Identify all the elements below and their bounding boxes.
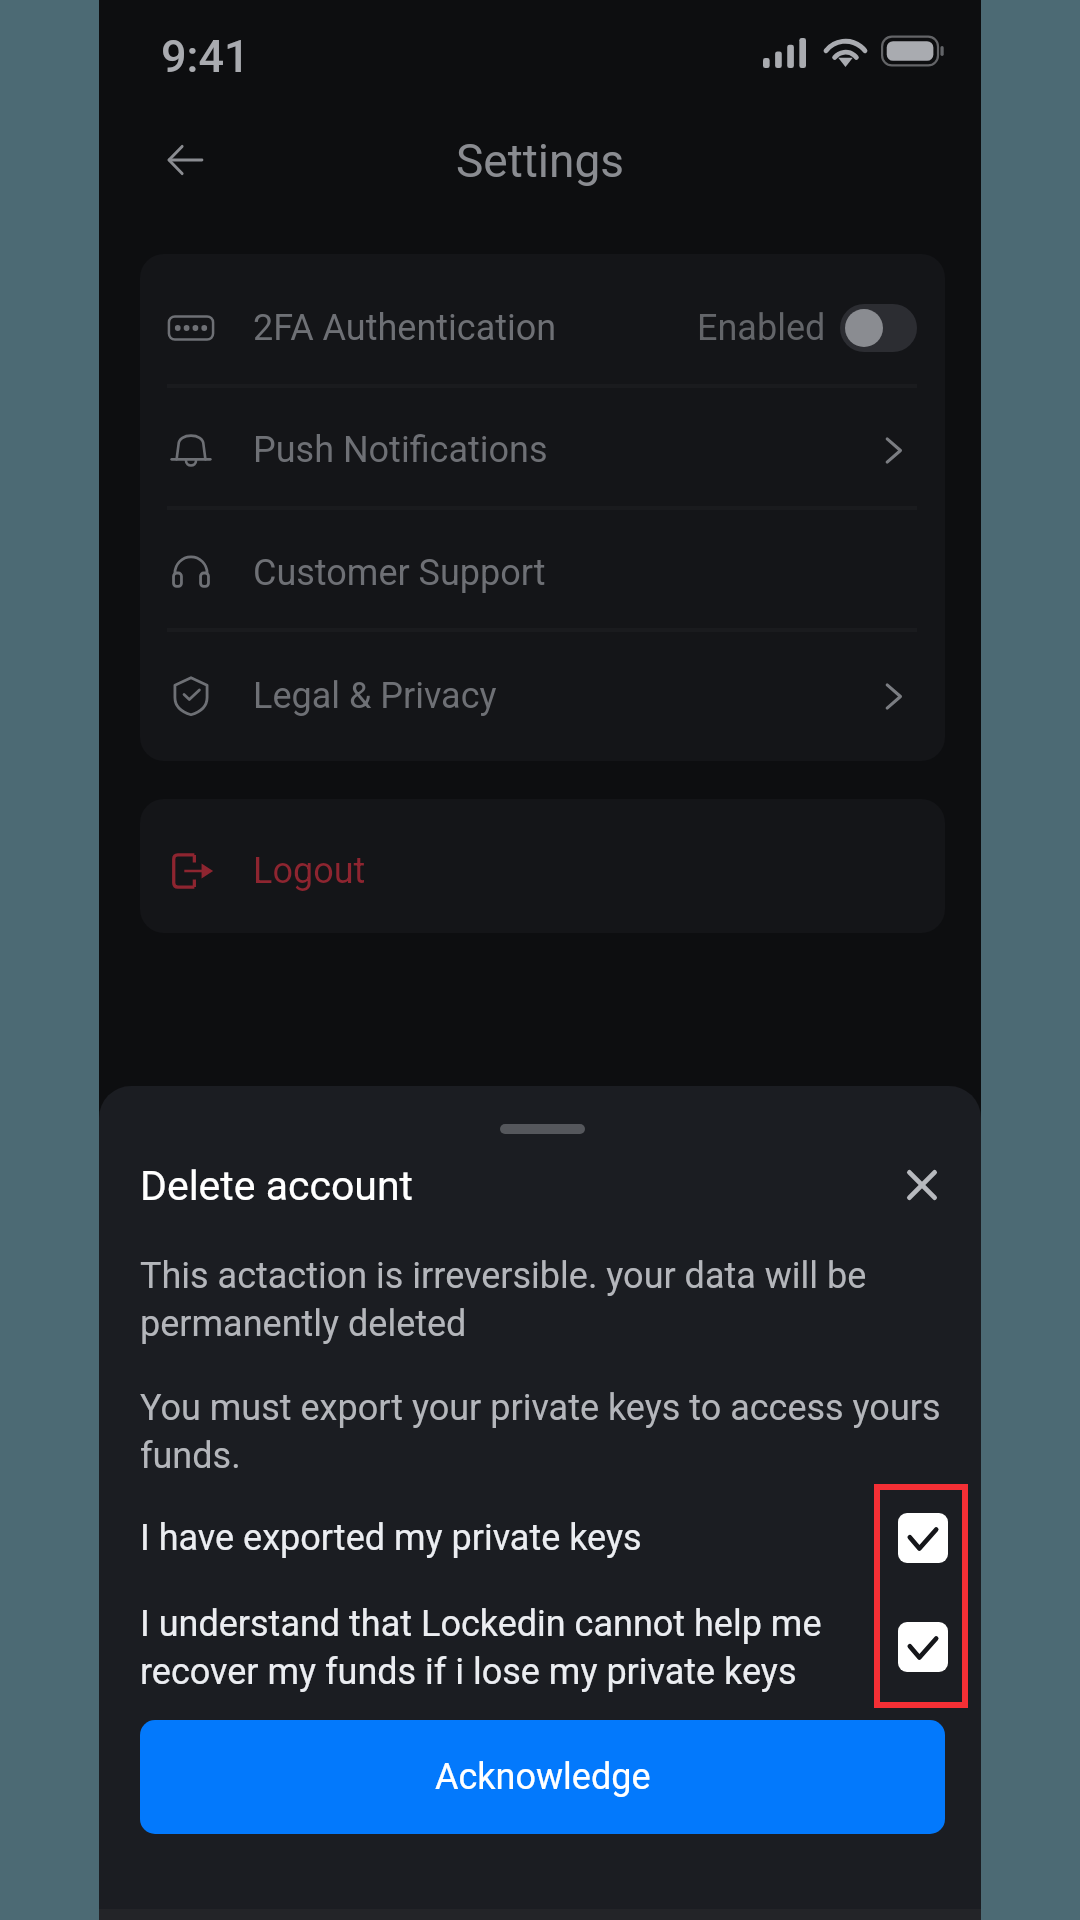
staticText: I understand that Lockedin cannot help m… <box>140 1598 870 1694</box>
button[interactable]: Push Notifications <box>140 385 945 515</box>
staticText: Customer Support <box>253 552 546 594</box>
button[interactable]: Checked <box>898 1622 948 1672</box>
button[interactable]: Back <box>143 118 227 202</box>
staticText: Legal & Privacy <box>253 675 497 717</box>
staticText: I have exported my private keys <box>140 1512 840 1560</box>
button[interactable]: Logout <box>140 799 945 933</box>
staticText: Settings <box>456 134 624 188</box>
staticText: Acknowledge <box>435 1756 651 1798</box>
staticText: 2FA Authentication <box>253 307 557 349</box>
staticText: 9:41 <box>161 30 250 83</box>
button[interactable]: Acknowledge <box>140 1720 945 1834</box>
staticText: Enabled <box>697 307 826 349</box>
staticText: Delete account <box>140 1162 413 1210</box>
button[interactable]: 2FA Authentication <box>140 263 945 393</box>
button[interactable]: Customer Support <box>140 508 945 638</box>
button[interactable]: Legal & Privacy <box>140 631 945 761</box>
staticText: This actaction is irreversible. your dat… <box>140 1250 945 1346</box>
button[interactable]: 2FA toggle <box>840 304 917 352</box>
button[interactable]: Checked <box>898 1513 948 1563</box>
staticText: Push Notifications <box>253 429 548 471</box>
button[interactable]: Close <box>887 1150 957 1220</box>
staticText: Logout <box>253 850 366 892</box>
staticText: You must export your private keys to acc… <box>140 1382 945 1478</box>
